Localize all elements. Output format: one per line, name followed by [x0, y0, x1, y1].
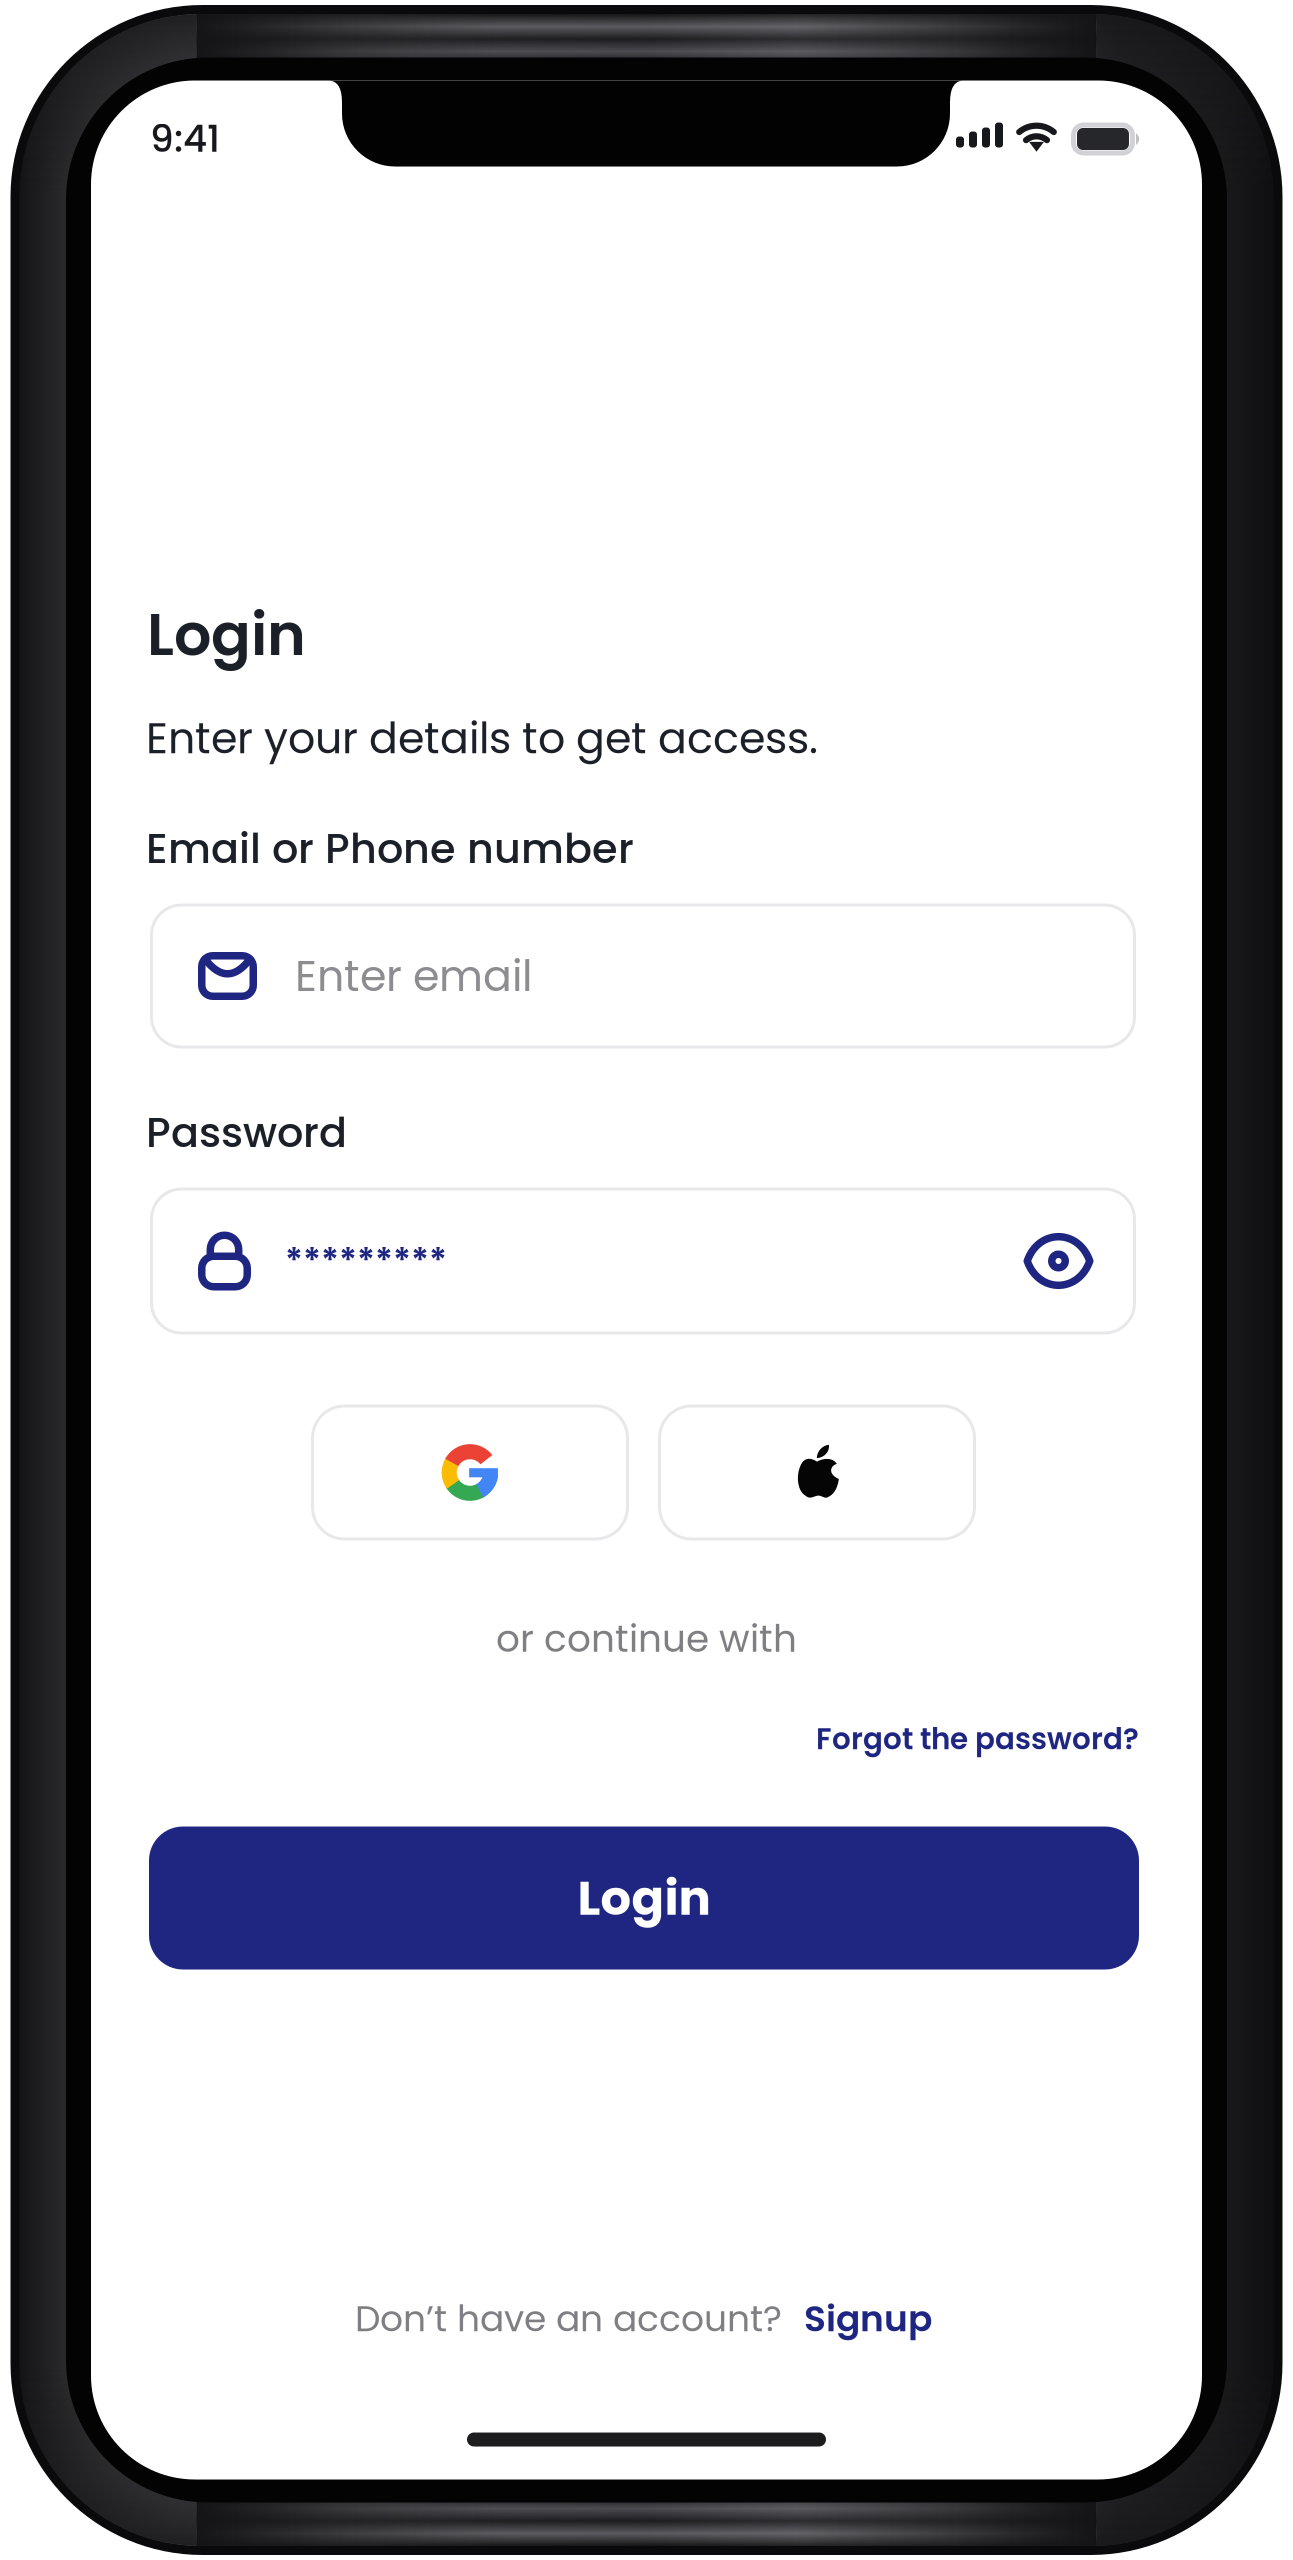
staticText: Enter email: [295, 946, 532, 1006]
staticText: *********: [285, 1237, 447, 1285]
staticText: Forgot the password?: [816, 1718, 1139, 1760]
staticText: Login: [577, 1864, 710, 1932]
staticText: Enter your details to get access.: [146, 708, 818, 768]
button[interactable]: Continue with Google: [311, 1404, 629, 1540]
staticText: Don’t have an account?: [355, 2293, 782, 2344]
button[interactable]: Signup: [782, 2293, 932, 2344]
button[interactable]: Forgot the password?: [153, 1718, 1139, 1760]
staticText: 9:41: [150, 112, 220, 165]
staticText: or continue with: [496, 1612, 797, 1665]
staticText: Login: [147, 593, 306, 676]
staticText: Email or Phone number: [146, 819, 634, 877]
button[interactable]: Login: [149, 1826, 1139, 1969]
staticText: Signup: [804, 2293, 932, 2344]
button[interactable]: Continue with Apple: [658, 1404, 976, 1540]
staticText: Password: [146, 1103, 347, 1161]
